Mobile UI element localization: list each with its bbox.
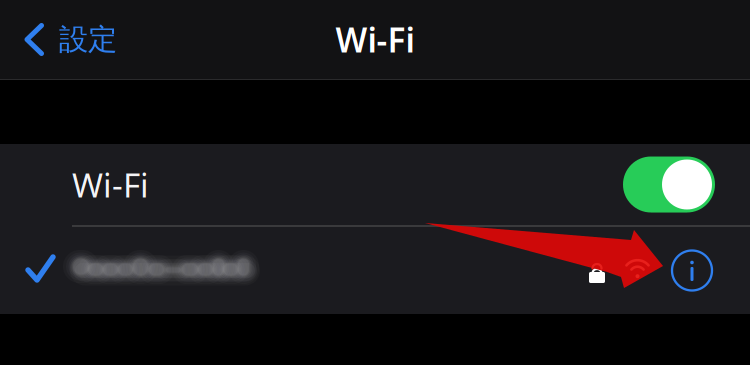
button[interactable]: Wi-Fi <box>623 156 715 212</box>
staticText: Wi-Fi <box>72 162 149 207</box>
button[interactable]: 設定 <box>0 0 127 79</box>
staticText: 設定 <box>59 21 117 57</box>
staticText: Wi-Fi <box>335 17 414 62</box>
button[interactable] <box>0 227 750 314</box>
